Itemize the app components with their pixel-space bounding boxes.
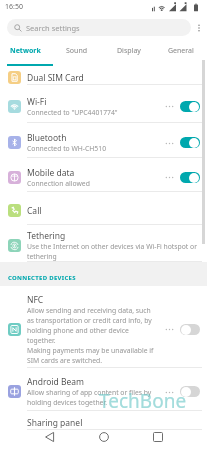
button[interactable]: Tethering (0, 225, 207, 262)
button[interactable]: Wi-Fi toggle (180, 101, 200, 112)
button[interactable]: Call (0, 192, 207, 225)
button[interactable]: More options (191, 14, 207, 41)
staticText: NFC (27, 294, 44, 306)
staticText: Connected to WH-CH510 (27, 144, 107, 153)
staticText: Sharing panel (27, 417, 83, 429)
staticText: Search settings (26, 23, 80, 33)
staticText: TechBone (99, 388, 187, 414)
staticText: Display (117, 46, 141, 56)
button[interactable]: Recents (147, 427, 168, 447)
button[interactable]: Wi-Fi (0, 85, 207, 123)
button[interactable]: Display (103, 41, 155, 64)
staticText: CONNECTED DEVICES (8, 274, 76, 282)
button[interactable]: Android Beam toggle (180, 386, 200, 397)
button[interactable]: Sharing panel (0, 411, 207, 430)
button[interactable]: Dual SIM Card (0, 66, 207, 85)
button[interactable]: Mobile data (0, 158, 207, 192)
staticText: Sound (66, 46, 88, 56)
button[interactable]: Bluetooth toggle (180, 137, 200, 148)
button[interactable]: Search settings (7, 19, 191, 36)
button[interactable]: Back (39, 427, 60, 447)
button[interactable]: General (155, 41, 207, 64)
staticText: Android Beam (27, 376, 85, 388)
staticText: Wi-Fi (27, 96, 47, 108)
button[interactable]: Sound (51, 41, 103, 64)
staticText: Dual SIM Card (27, 72, 84, 84)
staticText: Allow sending and receiving data, such a… (27, 306, 155, 365)
staticText: Tethering (27, 230, 66, 242)
staticText: Bluetooth (27, 132, 67, 144)
button[interactable]: Mobile data toggle (180, 172, 200, 183)
staticText: General (168, 46, 194, 56)
staticText: Use the Internet on other devices via Wi… (27, 242, 198, 261)
staticText: Connection allowed (27, 179, 90, 188)
staticText: Allow sharing of app content or files by… (27, 388, 155, 407)
staticText: Call (27, 205, 42, 217)
button[interactable]: Bluetooth (0, 123, 207, 158)
staticText: Connected to "UPC4401774" (27, 108, 118, 117)
staticText: Network (10, 46, 41, 56)
staticText: Mobile data (27, 167, 75, 179)
button[interactable]: NFC toggle (180, 324, 200, 335)
button[interactable]: NFC (0, 286, 207, 368)
staticText: 16:50 (5, 2, 23, 12)
button[interactable]: Network (0, 41, 51, 64)
button[interactable]: Android Beam (0, 368, 207, 411)
button[interactable]: Home (93, 427, 114, 447)
